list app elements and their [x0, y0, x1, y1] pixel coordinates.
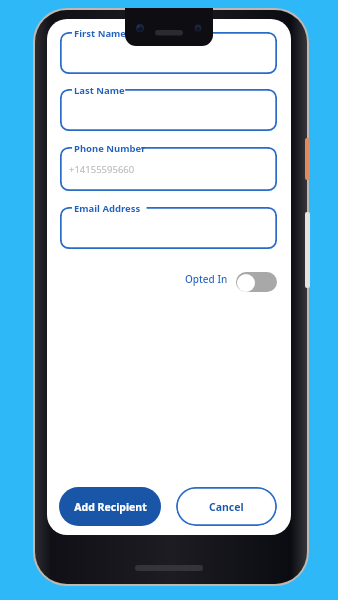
button[interactable]: Cancel: [176, 487, 277, 526]
staticText: Add Recipient: [74, 500, 147, 514]
staticText: Last Name: [74, 84, 125, 97]
staticText: First Name: [74, 27, 127, 40]
button[interactable]: First Name: [60, 32, 277, 74]
button[interactable]: Last Name: [60, 89, 277, 131]
staticText: +14155595660: [69, 163, 135, 176]
other: Volume: [305, 212, 310, 288]
staticText: Cancel: [209, 500, 244, 514]
staticText: Phone Number: [74, 142, 146, 155]
button[interactable]: Phone Number: [60, 147, 277, 191]
staticText: Email Address: [74, 202, 141, 215]
staticText: Opted In: [185, 272, 228, 286]
button[interactable]: Email Address: [60, 207, 277, 249]
button[interactable]: Opted In: [185, 266, 277, 292]
other: Power: [305, 138, 310, 180]
button[interactable]: Add Recipient: [59, 487, 161, 526]
